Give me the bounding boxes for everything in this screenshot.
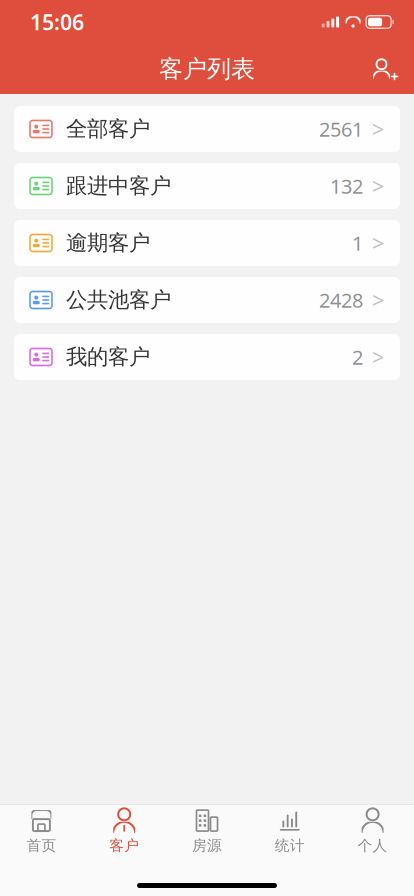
staticText: 逾期客户 [66, 230, 150, 256]
staticText: 客户列表 [159, 54, 255, 84]
staticText: 1 [352, 230, 363, 256]
button[interactable]: 我的客户 [14, 334, 400, 380]
button[interactable]: 公共池客户 [14, 277, 400, 323]
staticText: 跟进中客户 [66, 173, 171, 199]
button[interactable]: 客户 [83, 805, 166, 859]
staticText: 全部客户 [66, 116, 150, 142]
staticText: 132 [330, 173, 363, 199]
staticText: > [372, 172, 384, 200]
button[interactable]: 首页 [0, 805, 83, 859]
staticText: > [372, 343, 384, 371]
staticText: 统计 [275, 837, 305, 855]
staticText: 客户 [109, 837, 139, 855]
button[interactable]: 跟进中客户 [14, 163, 400, 209]
staticText: 公共池客户 [66, 287, 171, 313]
button[interactable]: 统计 [248, 805, 331, 859]
staticText: > [372, 115, 384, 143]
staticText: > [372, 229, 384, 257]
staticText: 2 [352, 344, 363, 370]
staticText: 首页 [26, 837, 56, 855]
staticText: 个人 [358, 837, 388, 855]
button[interactable]: 房源 [166, 805, 248, 859]
button[interactable]: 个人 [331, 805, 414, 859]
button[interactable]: 添加客户 [364, 47, 408, 91]
staticText: > [372, 286, 384, 314]
staticText: 我的客户 [66, 344, 150, 370]
staticText: 2561 [319, 116, 363, 142]
button[interactable]: 逾期客户 [14, 220, 400, 266]
staticText: 房源 [192, 837, 222, 855]
staticText: 2428 [319, 287, 363, 313]
staticText: 15:06 [30, 8, 84, 36]
button[interactable]: 全部客户 [14, 106, 400, 152]
